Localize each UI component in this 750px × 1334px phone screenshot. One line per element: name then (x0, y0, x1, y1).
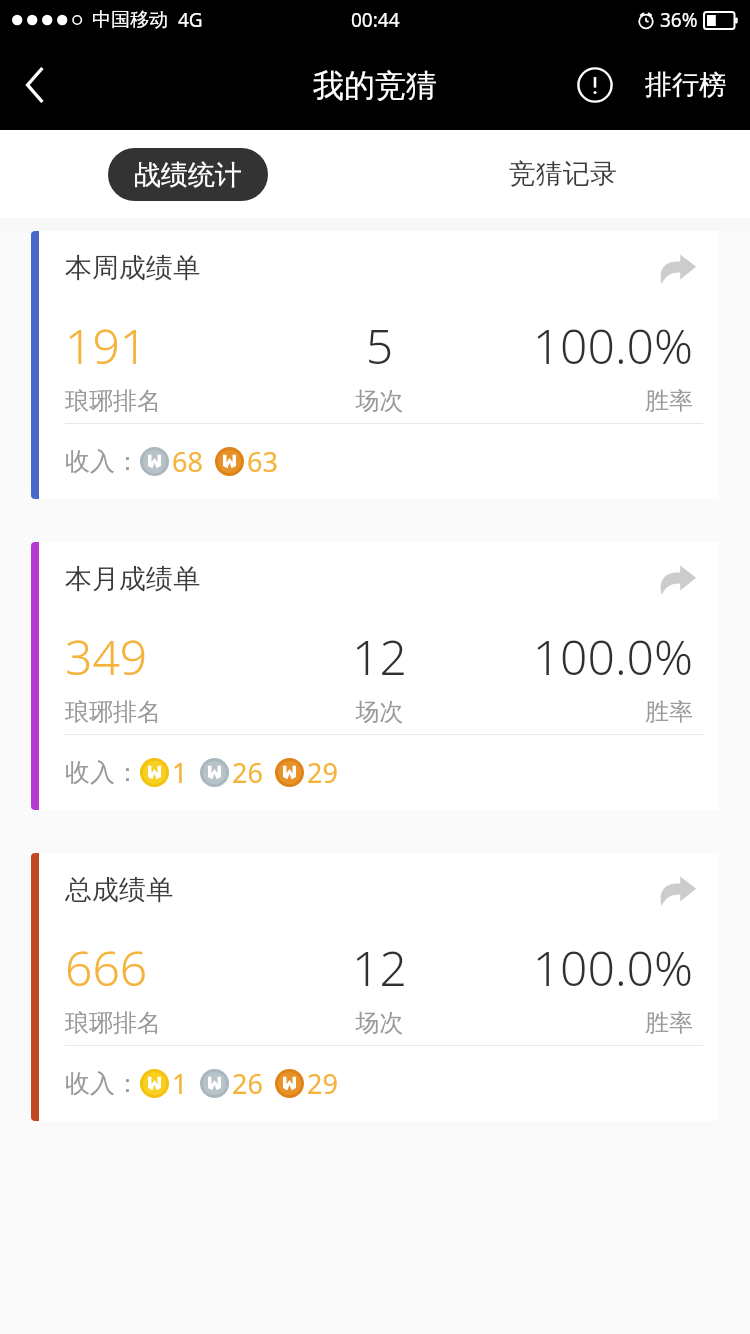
staticText: 12 (275, 935, 484, 1000)
staticText: 666 (65, 935, 275, 1000)
button[interactable]: 本周成绩单 (31, 231, 719, 499)
staticText: 100.0% (484, 624, 693, 689)
staticText: 36% (660, 7, 698, 33)
staticText: 收入： (65, 1068, 140, 1099)
staticText: 排行榜 (645, 68, 726, 102)
staticText: 竞猜记录 (509, 157, 617, 191)
staticText: 场次 (275, 1008, 484, 1038)
staticText: 场次 (275, 697, 484, 727)
staticText: 本月成绩单 (65, 562, 200, 596)
staticText: 胜率 (484, 697, 693, 727)
staticText: 收入： (65, 446, 140, 477)
button[interactable]: Info (563, 40, 627, 130)
staticText: 26 (232, 1065, 263, 1102)
staticText: 191 (65, 313, 275, 378)
staticText: 我的竞猜 (313, 66, 437, 105)
staticText: 胜率 (484, 386, 693, 416)
staticText: 总成绩单 (65, 873, 173, 907)
button[interactable]: Back (0, 40, 72, 130)
staticText: 琅琊排名 (65, 697, 275, 727)
button[interactable]: Share (651, 242, 703, 294)
staticText: 琅琊排名 (65, 386, 275, 416)
staticText: 00:44 (351, 7, 400, 33)
staticText: 中国移动 (92, 8, 168, 32)
staticText: 场次 (275, 386, 484, 416)
staticText: 战绩统计 (134, 158, 242, 192)
button[interactable]: 排行榜 (627, 40, 750, 130)
staticText: 29 (307, 754, 338, 791)
button[interactable]: Share (651, 553, 703, 605)
staticText: 1 (172, 1065, 188, 1102)
staticText: 349 (65, 624, 275, 689)
button[interactable]: 战绩统计 (0, 130, 375, 218)
staticText: 4G (178, 7, 203, 33)
staticText: 5 (275, 313, 484, 378)
staticText: 29 (307, 1065, 338, 1102)
button[interactable]: Share (651, 864, 703, 916)
staticText: 12 (275, 624, 484, 689)
staticText: 琅琊排名 (65, 1008, 275, 1038)
button[interactable]: 本月成绩单 (31, 542, 719, 810)
staticText: 26 (232, 754, 263, 791)
staticText: 68 (172, 443, 203, 480)
button[interactable]: 总成绩单 (31, 853, 719, 1121)
staticText: 收入： (65, 757, 140, 788)
staticText: 100.0% (484, 935, 693, 1000)
staticText: 63 (247, 443, 278, 480)
staticText: 本周成绩单 (65, 251, 200, 285)
staticText: 100.0% (484, 313, 693, 378)
button[interactable]: 竞猜记录 (375, 130, 750, 218)
staticText: 胜率 (484, 1008, 693, 1038)
staticText: 1 (172, 754, 188, 791)
